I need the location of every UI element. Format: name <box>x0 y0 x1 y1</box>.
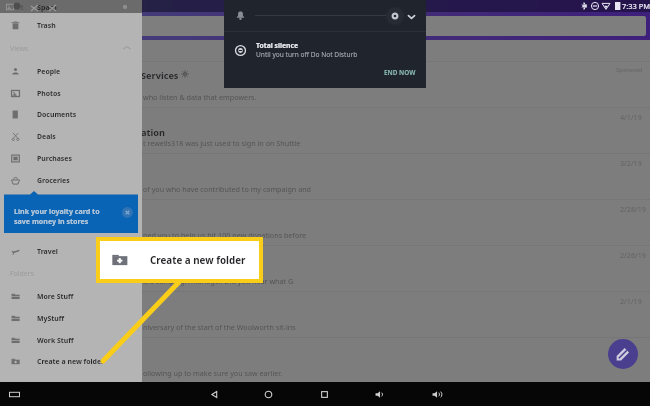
button[interactable]: ollowing up to make sure you saw earlier… <box>0 338 650 384</box>
staticText: 7:33 PM <box>622 1 650 11</box>
staticText: Photos <box>37 89 61 98</box>
button[interactable]: Purchases <box>0 151 142 165</box>
staticText: t <box>21 3 24 12</box>
button[interactable]: Groceries <box>0 173 142 187</box>
staticText: More Stuff <box>37 292 74 301</box>
button[interactable]: Documents <box>0 107 142 121</box>
staticText: Spam <box>37 2 57 12</box>
staticText: Sponsored <box>616 66 643 73</box>
staticText: People <box>37 67 61 76</box>
staticText: save money in stores <box>14 216 89 226</box>
staticText: 2/26/19 <box>620 250 646 260</box>
staticText: Purchases <box>37 154 72 163</box>
button[interactable]: Photos <box>0 86 142 100</box>
staticText: Create a new folder <box>37 357 105 366</box>
button[interactable]: Travel <box>0 244 142 258</box>
staticText: 3/2/19 <box>620 158 642 168</box>
button[interactable]: END NOW <box>384 68 416 77</box>
button[interactable]: People <box>0 64 142 78</box>
button[interactable]: Volume down <box>372 382 388 406</box>
staticText: 4/1/19 <box>620 112 642 122</box>
button[interactable] <box>0 40 650 62</box>
button[interactable]: Trash <box>0 18 142 32</box>
staticText: ollowing up to make sure you saw earlier… <box>143 368 283 378</box>
staticText: Views <box>10 44 29 53</box>
staticText: Create a new folder <box>150 254 246 267</box>
staticText: of you who have contributed to my campai… <box>143 184 312 194</box>
staticText: ara campaign manager. Did you hear what … <box>143 276 294 286</box>
staticText: Documents <box>37 110 77 119</box>
button[interactable]: 4/1/19 <box>0 108 650 154</box>
button[interactable]: Notification settings <box>386 7 404 25</box>
button[interactable]: Compose <box>608 339 638 369</box>
staticText: Services <box>141 69 179 82</box>
staticText: Travel <box>37 247 58 256</box>
staticText: Folders <box>10 269 34 278</box>
button[interactable]: Back <box>206 382 222 406</box>
staticText: 2/28/19 <box>620 204 646 214</box>
staticText: Total silence <box>256 41 299 50</box>
staticText: who listen & data that empowers. <box>143 92 257 102</box>
button[interactable]: Create a new folder <box>0 354 142 368</box>
button[interactable]: Recents <box>316 382 332 406</box>
button[interactable]: MyStuff <box>0 311 142 325</box>
button[interactable]: Collapse <box>402 7 420 25</box>
button[interactable]: 2/26/19 <box>0 246 650 292</box>
staticText: Groceries <box>37 176 70 185</box>
staticText: niversary of the start of the Woolworth … <box>143 322 296 332</box>
button[interactable]: Home <box>260 382 276 406</box>
button[interactable]: Sponsored <box>0 62 650 108</box>
staticText: ation <box>141 126 165 139</box>
button[interactable]: More Stuff <box>0 289 142 303</box>
staticText: MyStuff <box>37 314 65 323</box>
staticText: ned you to help us hit 100 new donations… <box>143 230 307 240</box>
staticText: Trash <box>37 21 56 30</box>
button[interactable]: Work Stuff <box>0 333 142 347</box>
button[interactable]: Keyboard <box>6 382 22 406</box>
staticText: Work Stuff <box>37 336 74 345</box>
button[interactable]: Deals <box>0 129 142 143</box>
staticText: Link your loyalty card to <box>14 206 100 216</box>
button[interactable]: Volume up <box>429 382 445 406</box>
button[interactable] <box>6 16 646 36</box>
button[interactable]: 3/2/19 <box>0 154 650 200</box>
staticText: Deals <box>37 132 56 141</box>
button[interactable]: 2/1/19 <box>0 292 650 338</box>
button[interactable]: Dismiss <box>121 206 133 218</box>
staticText: 2/1/19 <box>620 296 642 306</box>
button[interactable]: Total silence <box>224 32 426 88</box>
staticText: t rewells318 was just used to sign in on… <box>143 138 301 148</box>
staticText: END NOW <box>384 68 416 77</box>
staticText: Until you turn off Do Not Disturb <box>256 50 358 59</box>
button[interactable]: Create a new folder <box>100 241 259 279</box>
button[interactable]: 2/28/19 <box>0 200 650 246</box>
